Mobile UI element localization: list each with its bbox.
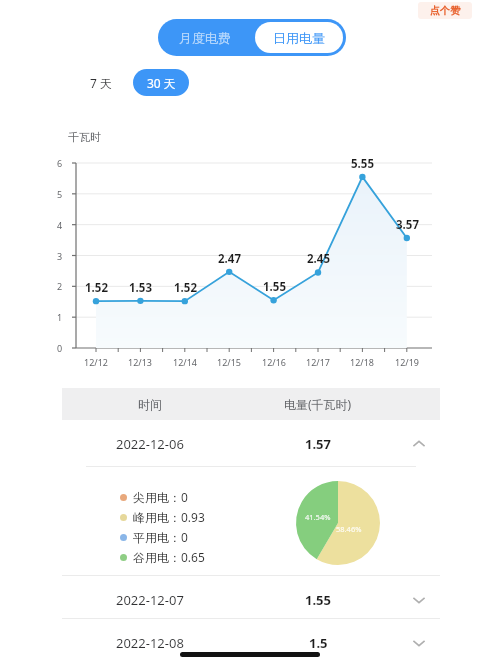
staticText: 2.45 [307,251,330,267]
staticText: 12/14 [173,356,197,368]
staticText: 12/18 [350,356,374,368]
other: Collapse [398,425,440,463]
staticText: 1.52 [85,280,108,296]
staticText: 41.54% [305,512,331,522]
staticText: 12/19 [395,356,419,368]
button[interactable]: 2022-12-07 [62,581,440,619]
staticText: 5.55 [351,156,374,172]
staticText: 6 [57,157,63,169]
staticText: 1.5 [309,634,328,652]
staticText: 1.52 [174,280,197,296]
staticText: 1.57 [305,435,331,453]
staticText: 1.55 [305,591,331,609]
staticText: 4 [57,219,63,231]
staticText: 日用电量 [273,30,325,46]
staticText: 30 天 [147,75,176,91]
staticText: 1.55 [263,279,286,295]
staticText: 5 [57,188,63,200]
button[interactable]: 7 天 [72,69,130,96]
button[interactable]: 2022-12-08 [62,624,440,662]
other: Expand [398,624,440,662]
staticText: 千瓦时 [68,130,101,144]
staticText: 2022-12-07 [116,591,184,609]
staticText: 3.57 [396,217,419,233]
staticText: 7 天 [90,75,112,91]
staticText: 58.46% [336,524,362,534]
staticText: 12/16 [262,356,286,368]
button[interactable]: 月度电费 [158,19,252,56]
staticText: 2022-12-08 [116,634,184,652]
staticText: 0 [57,342,63,354]
other: Expand [398,581,440,619]
staticText: 2.47 [218,251,241,267]
staticText: 3 [57,250,63,262]
staticText: 2 [57,280,63,292]
button[interactable]: 2022-12-06 [62,425,440,463]
staticText: 时间 [138,397,162,412]
staticText: 12/15 [217,356,241,368]
staticText: 谷用电：0.65 [133,549,205,565]
staticText: 月度电费 [179,30,231,46]
staticText: 1 [57,311,63,323]
staticText: 12/13 [128,356,152,368]
staticText: 12/12 [84,356,108,368]
button[interactable]: 30 天 [133,69,189,96]
staticText: 12/17 [306,356,330,368]
staticText: 峰用电：0.93 [133,509,205,525]
staticText: 2022-12-06 [116,435,184,453]
button[interactable]: 日用电量 [255,22,343,53]
staticText: 点个赞 [430,4,460,17]
staticText: 电量(千瓦时) [284,396,352,412]
staticText: 1.53 [129,280,152,296]
staticText: 平用电：0 [133,529,188,545]
staticText: 尖用电：0 [133,489,188,505]
